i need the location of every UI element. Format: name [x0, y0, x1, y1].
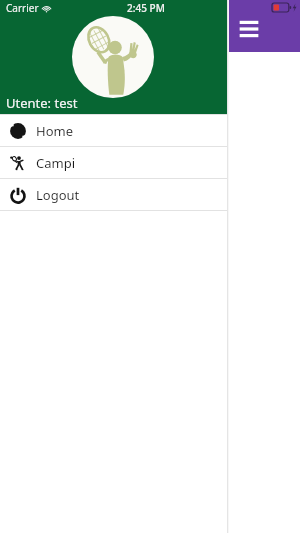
- staticText: Campi: [36, 154, 76, 172]
- button[interactable]: Logout: [0, 179, 227, 210]
- staticText: Utente: test: [6, 94, 78, 112]
- button[interactable]: Home: [0, 115, 227, 146]
- button[interactable]: Campi: [0, 147, 227, 178]
- staticText: Carrier: [6, 1, 39, 15]
- staticText: 2:45 PM: [127, 1, 165, 15]
- button[interactable]: Open navigation menu: [236, 18, 262, 40]
- staticText: Logout: [36, 186, 80, 204]
- staticText: Home: [36, 122, 73, 140]
